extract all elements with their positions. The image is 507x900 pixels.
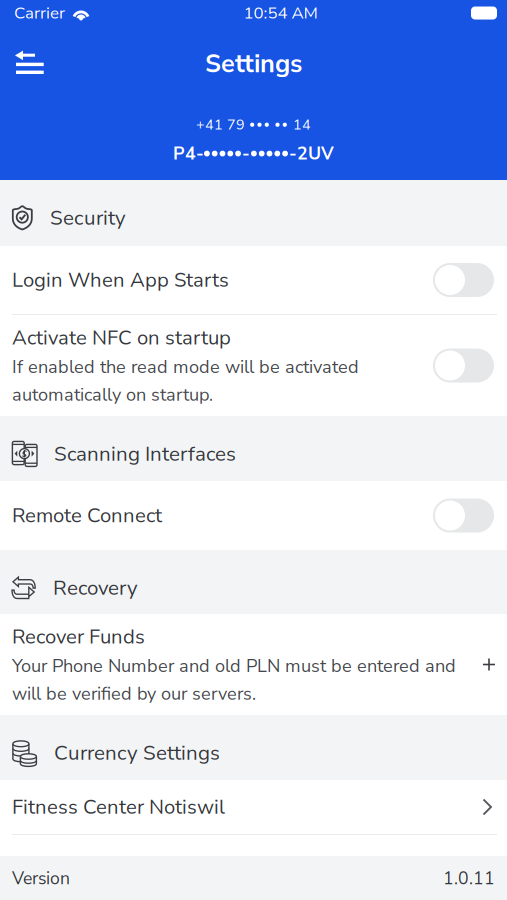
staticText: Remote Connect (12, 502, 162, 529)
staticText: Version (12, 866, 70, 890)
staticText: Activate NFC on startup (12, 324, 231, 351)
button[interactable]: Recover Funds (0, 614, 507, 715)
staticText: Fitness Center Notiswil (12, 793, 225, 821)
staticText: 14 (293, 115, 311, 134)
button[interactable]: Login When App Starts (0, 246, 507, 314)
staticText: Scanning Interfaces (54, 440, 236, 468)
staticText: automatically on startup. (12, 382, 213, 407)
staticText: 1.0.11 (443, 866, 495, 890)
staticText: Login When App Starts (12, 266, 229, 294)
staticText: Security (50, 204, 126, 232)
staticText: Recovery (53, 574, 138, 602)
button[interactable]: Activate NFC on startup (0, 315, 507, 416)
button[interactable]: Fitness Center Notiswil (0, 780, 507, 834)
staticText: 10:54 AM (243, 1, 317, 24)
staticText: will be verified by our servers. (12, 681, 256, 706)
staticText: +41 79 (196, 115, 245, 134)
staticText: -2UV (289, 141, 334, 166)
staticText: If enabled the read mode will be activat… (12, 355, 359, 379)
staticText: Settings (205, 47, 302, 81)
staticText: Recover Funds (12, 623, 145, 650)
staticText: Carrier (14, 1, 65, 24)
staticText: Currency Settings (54, 739, 220, 767)
staticText: Your Phone Number and old PLN must be en… (12, 654, 456, 678)
button[interactable]: Menu (0, 38, 59, 84)
staticText: P4- (173, 141, 204, 166)
staticText: - (242, 141, 250, 166)
button[interactable]: Remote Connect (0, 481, 507, 550)
